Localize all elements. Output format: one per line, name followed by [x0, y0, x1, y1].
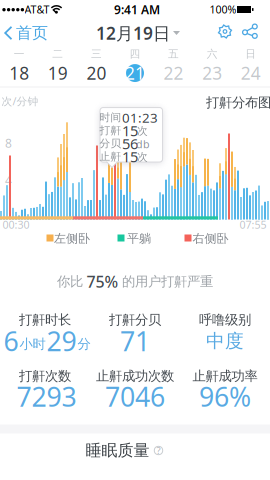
staticText: 止鼾: [99, 150, 121, 163]
staticText: 次: [137, 124, 148, 137]
staticText: 时间: [99, 111, 121, 124]
staticText: 75%: [86, 271, 118, 292]
button[interactable]: 首页: [4, 23, 48, 43]
staticText: 打鼾: [99, 124, 121, 137]
staticText: 日: [245, 47, 256, 60]
staticText: 100%: [209, 2, 236, 16]
staticText: 24: [241, 61, 261, 84]
staticText: 01:23: [122, 109, 158, 126]
staticText: 止鼾成功率: [192, 368, 257, 384]
staticText: 四: [129, 47, 140, 60]
staticText: 中度: [206, 329, 244, 352]
staticText: 三: [91, 47, 102, 60]
staticText: 07:55: [239, 217, 266, 232]
button[interactable]: 睡眠质量: [85, 441, 163, 460]
button[interactable]: 日: [238, 47, 264, 81]
staticText: 7046: [105, 379, 165, 414]
staticText: 00:30: [2, 217, 29, 232]
button[interactable]: 12月19日: [96, 21, 180, 44]
button[interactable]: Settings: [216, 23, 233, 40]
staticText: 12月19日: [96, 21, 170, 44]
button[interactable]: 三: [83, 47, 109, 81]
staticText: ?: [156, 444, 160, 457]
staticText: 左侧卧: [54, 231, 90, 246]
button[interactable]: 六: [199, 47, 225, 81]
staticText: 次: [137, 150, 148, 163]
staticText: 18: [9, 61, 29, 84]
staticText: 打鼾次数: [19, 368, 71, 384]
staticText: 9:41 AM: [114, 1, 160, 17]
button[interactable]: 二: [45, 47, 71, 81]
staticText: 15: [122, 121, 138, 140]
staticText: 20: [86, 61, 106, 84]
button[interactable]: 五: [161, 47, 187, 81]
staticText: 7293: [16, 379, 76, 414]
staticText: 15: [122, 147, 138, 166]
staticText: 56: [122, 134, 138, 153]
staticText: 右侧卧: [192, 231, 228, 246]
staticText: 71: [120, 323, 150, 359]
staticText: 96%: [199, 379, 251, 414]
staticText: 22: [164, 61, 184, 84]
staticText: 的用户打鼾严重: [122, 273, 213, 290]
staticText: 6: [3, 323, 18, 359]
staticText: 止鼾成功次数: [96, 368, 174, 384]
staticText: 19: [48, 61, 68, 84]
staticText: 23: [202, 61, 222, 84]
staticText: AT&T: [24, 2, 49, 16]
button[interactable]: Share: [242, 23, 258, 38]
staticText: 次/分钟: [1, 94, 38, 108]
staticText: 小时: [19, 336, 45, 352]
staticText: 21: [125, 61, 145, 84]
staticText: 一: [14, 47, 25, 60]
staticText: 六: [207, 47, 218, 60]
staticText: 五: [168, 47, 179, 60]
staticText: 29: [46, 323, 76, 359]
staticText: 8: [5, 135, 12, 151]
staticText: 分: [77, 336, 90, 352]
staticText: 首页: [16, 23, 48, 43]
staticText: 二: [52, 47, 63, 60]
staticText: 平躺: [127, 231, 151, 246]
staticText: 打鼾时长: [19, 312, 71, 328]
staticText: 分贝: [99, 137, 121, 150]
button[interactable]: 四: [122, 47, 148, 81]
staticText: 睡眠质量: [85, 441, 149, 460]
button[interactable]: 一: [6, 47, 32, 81]
staticText: 打鼾分贝: [109, 312, 161, 328]
staticText: 打鼾分布图: [206, 94, 270, 111]
staticText: 4: [5, 172, 12, 188]
staticText: 你比: [57, 273, 83, 290]
staticText: 呼噜级别: [199, 312, 251, 328]
staticText: db: [136, 137, 150, 151]
